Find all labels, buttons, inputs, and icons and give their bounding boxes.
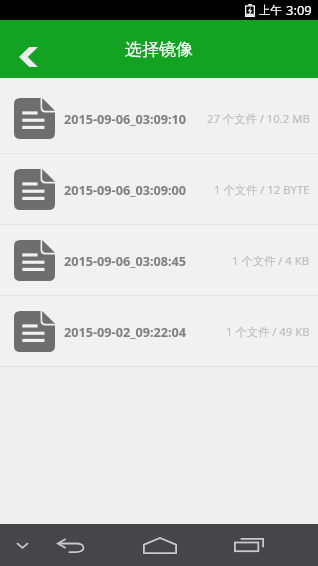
button[interactable]: Home: [124, 524, 196, 566]
staticText: 2015-09-06_03:08:45: [64, 252, 187, 269]
staticText: 选择镜像: [125, 39, 193, 60]
button[interactable]: Back: [35, 524, 107, 566]
staticText: 上午: [259, 3, 282, 17]
button[interactable]: Hide keyboard: [0, 524, 44, 566]
button[interactable]: Back: [10, 42, 46, 72]
staticText: 3:09: [286, 1, 312, 19]
button[interactable]: 2015-09-06_03:08:45: [0, 225, 318, 295]
staticText: 2015-09-06_03:09:00: [64, 181, 187, 198]
button[interactable]: Recent apps: [213, 524, 285, 566]
button[interactable]: 2015-09-06_03:09:00: [0, 154, 318, 224]
staticText: 27 个文件 / 10.2 MB: [207, 111, 310, 126]
staticText: 2015-09-06_03:09:10: [64, 110, 187, 127]
button[interactable]: 2015-09-06_03:09:10: [0, 83, 318, 153]
staticText: 1 个文件 / 49 KB: [226, 324, 310, 339]
staticText: 2015-09-02_09:22:04: [64, 323, 187, 340]
staticText: 1 个文件 / 4 KB: [232, 253, 310, 268]
button[interactable]: 2015-09-02_09:22:04: [0, 296, 318, 366]
staticText: 1 个文件 / 12 BYTE: [214, 182, 310, 197]
